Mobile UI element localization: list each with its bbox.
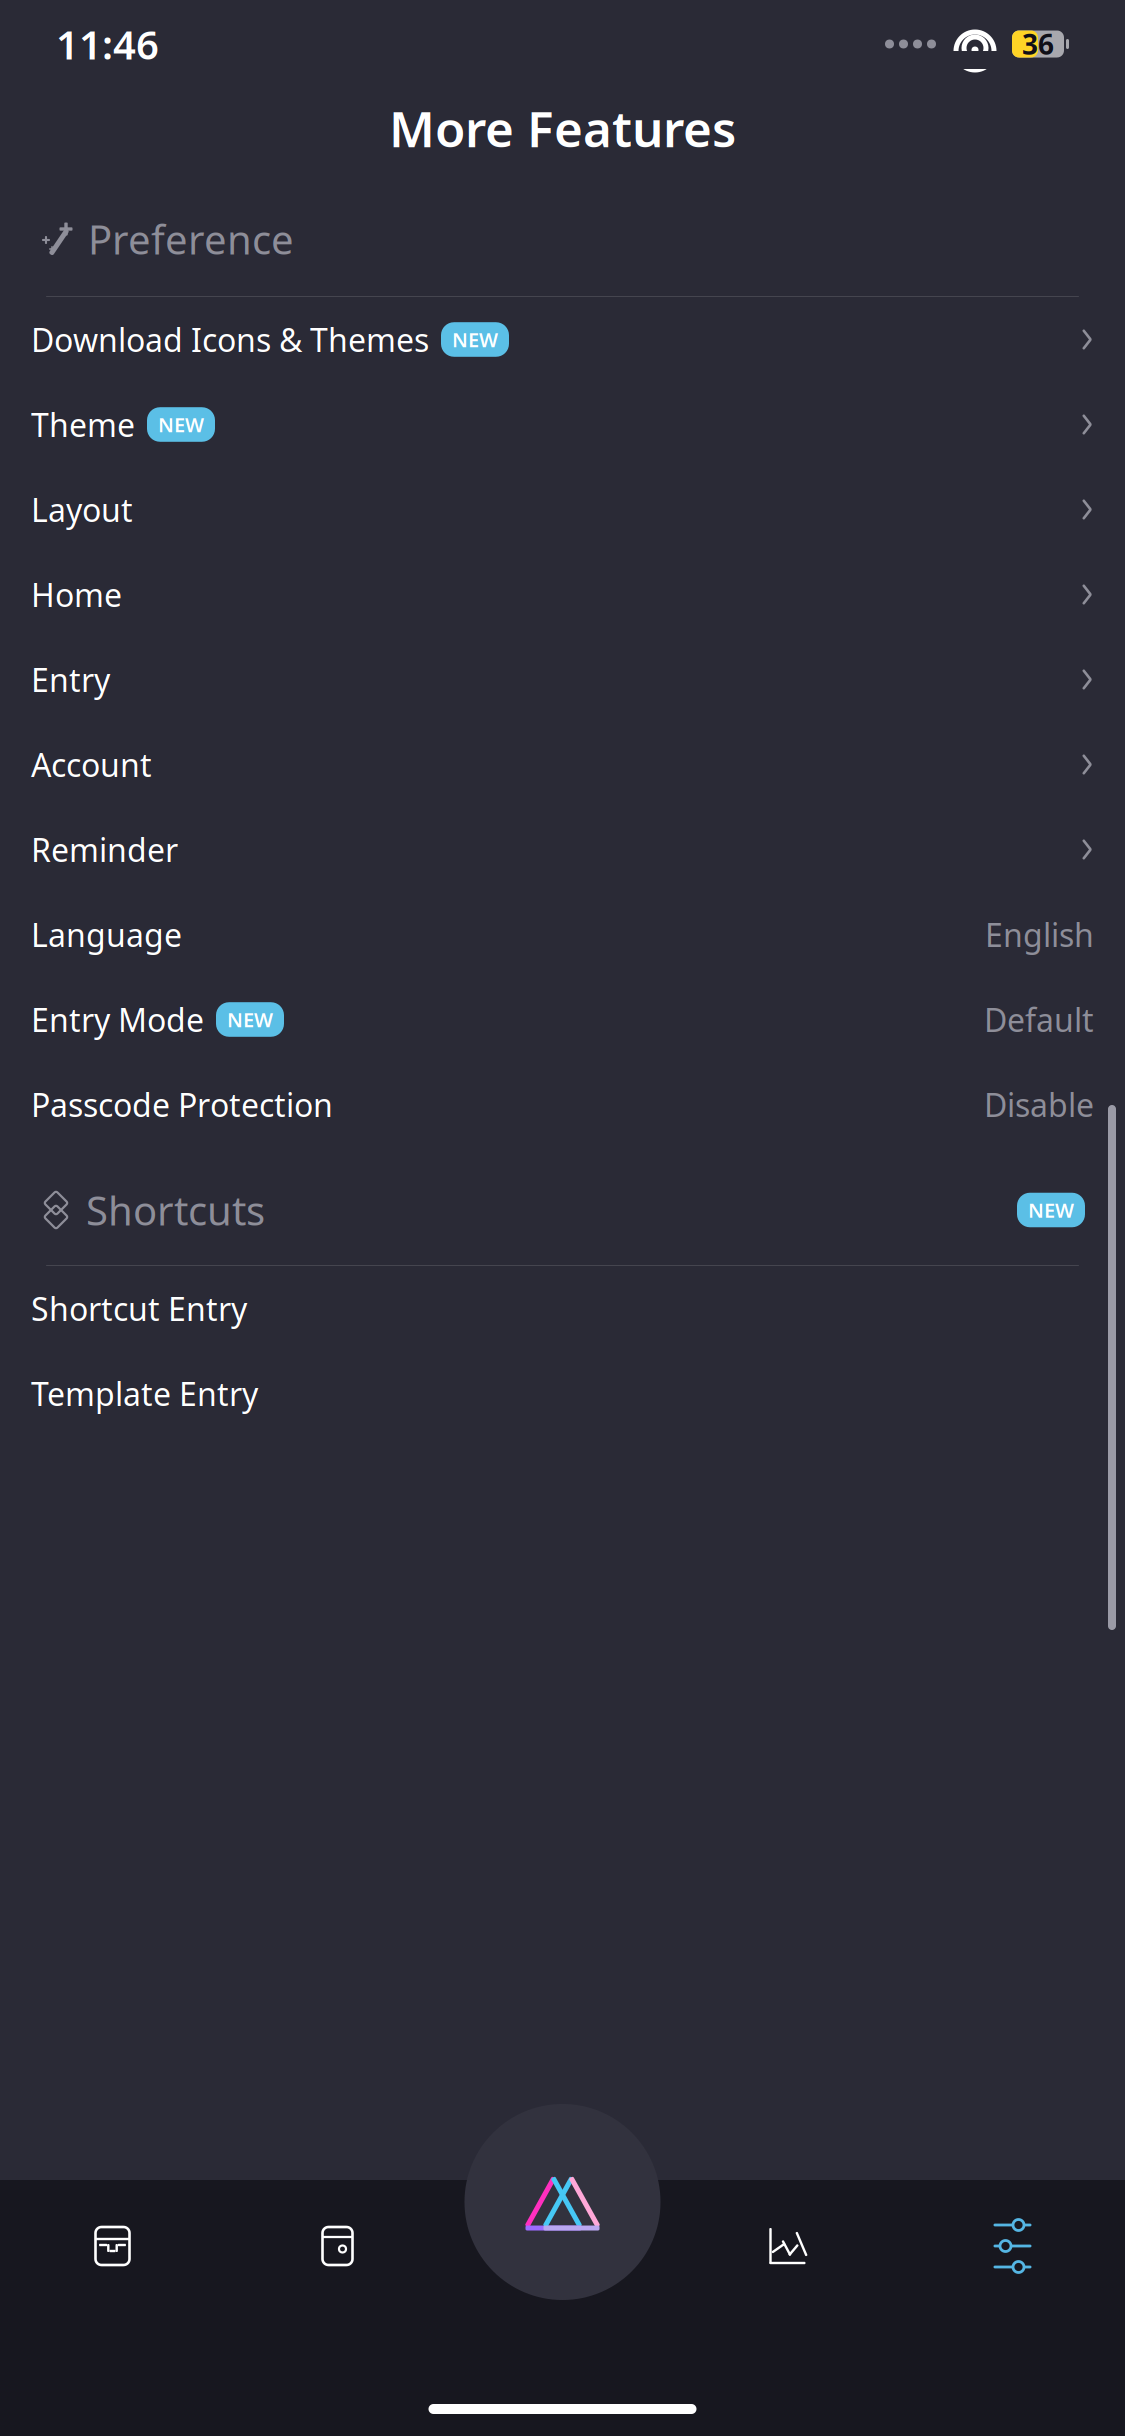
- button[interactable]: Records: [0, 2186, 225, 2306]
- button[interactable]: Add entry: [464, 2104, 660, 2300]
- staticText: Account: [31, 743, 152, 786]
- button[interactable]: Reminder: [0, 807, 1125, 892]
- staticText: Shortcut Entry: [31, 1287, 247, 1330]
- button[interactable]: Passcode Protection: [0, 1062, 1125, 1147]
- button[interactable]: Download Icons & Themes: [0, 297, 1125, 382]
- staticText: Home: [31, 573, 122, 616]
- button[interactable]: Add: [450, 2186, 675, 2306]
- staticText: Disable: [984, 1083, 1094, 1126]
- staticText: NEW: [1028, 1197, 1074, 1223]
- staticText: Shortcuts: [86, 1183, 265, 1236]
- staticText: Passcode Protection: [31, 1083, 333, 1126]
- button[interactable]: Charts: [675, 2186, 900, 2306]
- staticText: NEW: [227, 1006, 273, 1033]
- button[interactable]: Shortcut Entry: [0, 1266, 1125, 1351]
- staticText: 36: [1022, 25, 1054, 63]
- button[interactable]: Accounts: [225, 2186, 450, 2306]
- staticText: Download Icons & Themes: [31, 318, 429, 361]
- button[interactable]: Template Entry: [0, 1351, 1125, 1436]
- staticText: Preference: [88, 212, 294, 265]
- button[interactable]: Entry Mode: [0, 977, 1125, 1062]
- staticText: Reminder: [31, 828, 178, 871]
- button[interactable]: Home: [0, 552, 1125, 637]
- staticText: NEW: [158, 411, 204, 438]
- button[interactable]: Language: [0, 892, 1125, 977]
- staticText: Template Entry: [31, 1372, 258, 1415]
- staticText: More Features: [389, 95, 736, 161]
- staticText: Entry: [31, 658, 110, 701]
- staticText: Language: [31, 913, 182, 956]
- staticText: Entry Mode: [31, 998, 204, 1041]
- staticText: NEW: [452, 326, 498, 353]
- staticText: Layout: [31, 488, 133, 531]
- staticText: Theme: [31, 403, 135, 446]
- staticText: Default: [984, 998, 1094, 1041]
- staticText: 11:46: [56, 17, 159, 70]
- button[interactable]: Settings: [900, 2186, 1125, 2306]
- button[interactable]: Account: [0, 722, 1125, 807]
- button[interactable]: Entry: [0, 637, 1125, 722]
- button[interactable]: Theme: [0, 382, 1125, 467]
- staticText: English: [985, 913, 1094, 956]
- button[interactable]: Layout: [0, 467, 1125, 552]
